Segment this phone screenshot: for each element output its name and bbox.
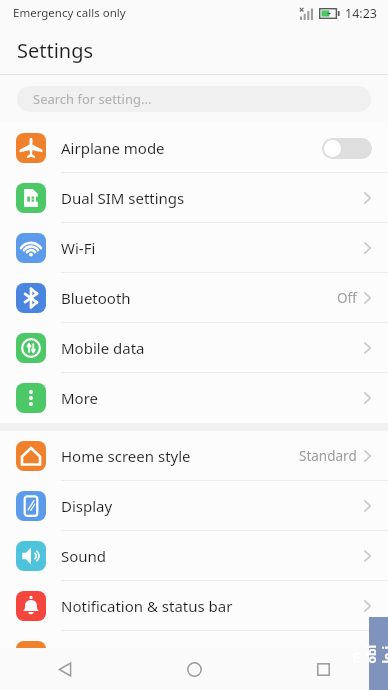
button[interactable]: Mobile data xyxy=(0,323,388,373)
button[interactable]: Display xyxy=(0,481,388,531)
button[interactable]: Wi-Fi xyxy=(0,223,388,273)
staticText: Wi-Fi xyxy=(61,238,364,258)
button[interactable]: More xyxy=(0,373,388,423)
staticText: Apps xyxy=(61,646,364,666)
staticText: Airplane mode xyxy=(61,138,322,158)
button[interactable]: Home screen style xyxy=(0,431,388,481)
button[interactable]: Search for setting... xyxy=(17,86,371,112)
button[interactable]: Apps xyxy=(0,631,388,681)
button[interactable]: Dual SIM settings xyxy=(0,173,388,223)
staticText: Home screen style xyxy=(61,446,299,466)
staticText: Off xyxy=(337,289,357,307)
staticText: Display xyxy=(61,496,364,516)
staticText: Dual SIM settings xyxy=(61,188,364,208)
staticText: Bluetooth xyxy=(61,288,337,308)
staticText: mobile.ir xyxy=(346,644,388,663)
staticText: Mobile data xyxy=(61,338,364,358)
staticText: 14:23 xyxy=(345,5,377,22)
button[interactable]: Sound xyxy=(0,531,388,581)
button[interactable]: Recents xyxy=(259,648,388,690)
staticText: Sound xyxy=(61,546,364,566)
staticText: More xyxy=(61,388,364,408)
staticText: Search for setting... xyxy=(33,90,152,108)
button[interactable]: Airplane mode toggle xyxy=(322,138,372,159)
staticText: Settings xyxy=(17,37,94,64)
button[interactable]: Bluetooth xyxy=(0,273,388,323)
button[interactable]: Back xyxy=(0,648,130,690)
staticText: Standard xyxy=(299,447,357,465)
staticText: Notification & status bar xyxy=(61,596,364,616)
button[interactable]: Home xyxy=(130,648,259,690)
staticText: Emergency calls only xyxy=(13,5,126,21)
button[interactable]: Airplane mode xyxy=(0,123,388,173)
button[interactable]: Notification & status bar xyxy=(0,581,388,631)
